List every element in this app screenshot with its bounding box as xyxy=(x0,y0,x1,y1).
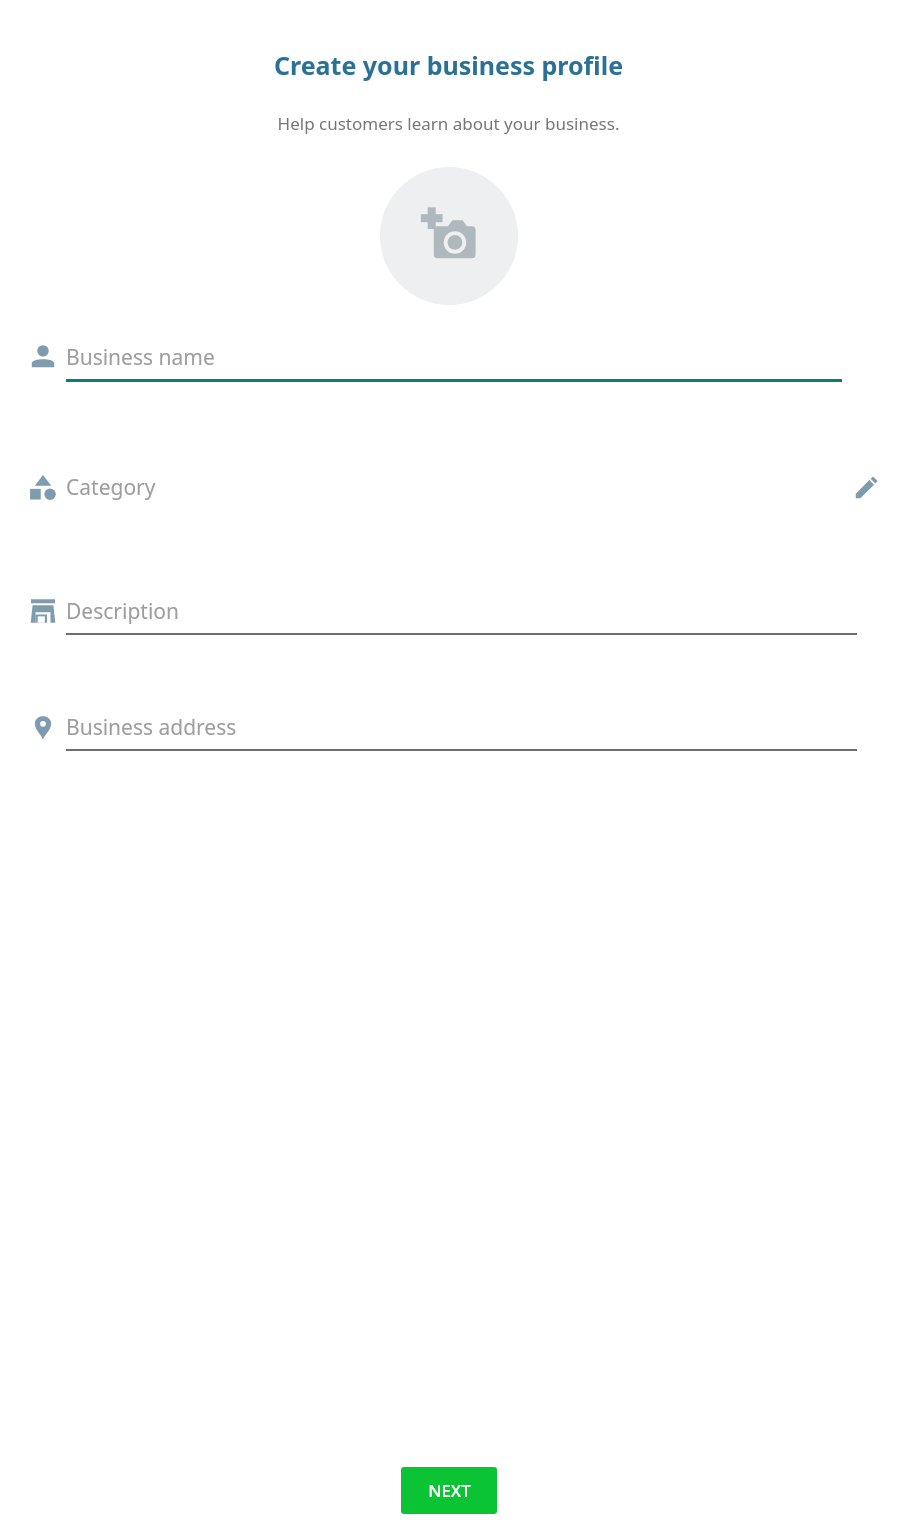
staticText: Business address xyxy=(66,713,237,742)
button[interactable]: NEXT xyxy=(401,1467,497,1514)
staticText: Help customers learn about your business… xyxy=(0,112,897,135)
staticText: Create your business profile xyxy=(0,48,897,82)
staticText: Description xyxy=(66,597,180,626)
button[interactable]: Edit category xyxy=(837,465,897,509)
button[interactable]: Business address xyxy=(0,705,897,763)
button[interactable]: Description xyxy=(0,589,897,647)
button[interactable]: Category xyxy=(0,465,897,523)
staticText: Business name xyxy=(66,343,215,372)
button[interactable]: Business name xyxy=(0,335,897,393)
staticText: Category xyxy=(66,473,156,502)
button[interactable]: Add business photo xyxy=(380,167,518,305)
staticText: NEXT xyxy=(428,1479,471,1502)
